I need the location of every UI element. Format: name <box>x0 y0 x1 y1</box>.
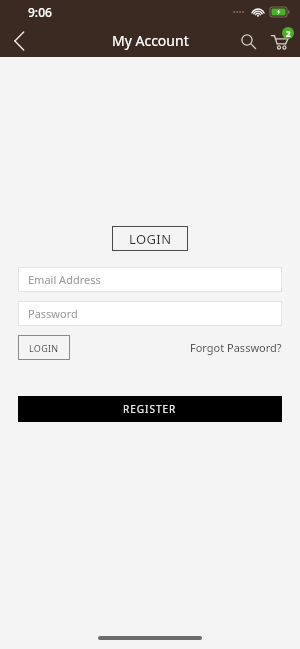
staticText: REGISTER <box>123 402 177 416</box>
button[interactable]: LOGIN <box>112 226 188 251</box>
button[interactable]: REGISTER <box>18 396 282 422</box>
staticText: 2 <box>286 28 291 39</box>
staticText: LOGIN <box>29 342 59 354</box>
button[interactable]: Back <box>3 25 35 57</box>
button[interactable]: LOGIN <box>18 335 70 360</box>
button[interactable]: Cart <box>263 25 295 57</box>
staticText: Email Address <box>28 272 101 287</box>
staticText: My Account <box>112 31 189 50</box>
button[interactable]: Password <box>18 301 282 326</box>
staticText: 9:06 <box>28 4 52 20</box>
staticText: LOGIN <box>129 230 172 248</box>
button[interactable]: Search <box>233 26 263 56</box>
button[interactable]: Forgot Password? <box>190 335 282 360</box>
staticText: Forgot Password? <box>190 340 282 355</box>
staticText: Password <box>28 306 78 321</box>
button[interactable]: Email Address <box>18 267 282 292</box>
